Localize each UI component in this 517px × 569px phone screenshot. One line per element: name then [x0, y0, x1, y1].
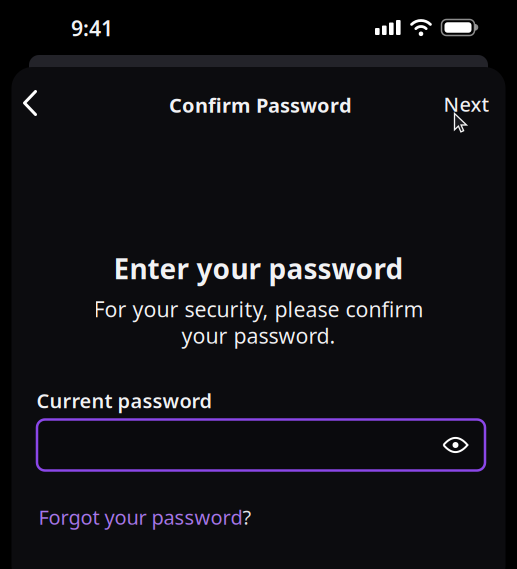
- button[interactable]: Back: [22, 90, 38, 116]
- staticText: Enter your password: [113, 250, 403, 287]
- staticText: Next: [443, 91, 489, 117]
- button[interactable]: Next: [443, 91, 489, 117]
- secureTextField[interactable]: [37, 430, 442, 460]
- button[interactable]: Show password: [442, 436, 469, 454]
- staticText: 9:41: [71, 14, 113, 42]
- staticText: Forgot your password: [38, 504, 242, 530]
- staticText: your password.: [181, 321, 335, 350]
- staticText: Confirm Password: [169, 92, 352, 118]
- button[interactable]: Forgot your password: [38, 504, 251, 530]
- staticText: ?: [242, 504, 251, 530]
- staticText: For your security, please confirm: [93, 295, 423, 323]
- staticText: Current password: [36, 387, 212, 414]
